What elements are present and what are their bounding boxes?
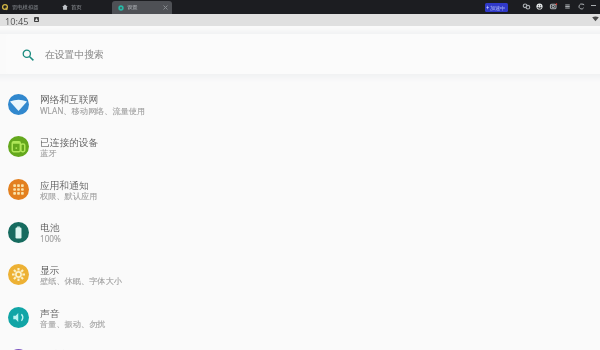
staticText: 在设置中搜索 [45, 49, 104, 61]
button[interactable]: 电池 [0, 211, 600, 254]
button[interactable]: 加速中 [485, 3, 508, 12]
button[interactable]: Close tab [163, 5, 168, 10]
staticText: 10:45 [5, 15, 29, 27]
button[interactable]: 应用和通知 [0, 168, 600, 211]
button[interactable]: Multi instance [523, 3, 530, 10]
staticText: 显示 [40, 265, 60, 277]
staticText: 电池 [40, 222, 60, 234]
staticText: 壁纸、休眠、字体大小 [40, 276, 122, 286]
staticText: 音量、振动、勿扰 [40, 319, 106, 329]
button[interactable]: Screenshot [550, 3, 557, 10]
staticText: 设置 [127, 4, 138, 11]
button[interactable]: 存储空间 [0, 338, 600, 350]
staticText: 加速中 [490, 5, 505, 11]
button[interactable]: Rotate [578, 3, 585, 10]
staticText: 雷电模拟器 [12, 4, 39, 11]
button[interactable]: 在设置中搜索 [6, 34, 600, 74]
button[interactable]: Emoji [536, 3, 543, 10]
staticText: 应用和通知 [40, 180, 89, 192]
staticText: 首页 [71, 4, 82, 11]
staticText: 已连接的设备 [40, 137, 99, 149]
staticText: 蓝牙 [40, 148, 57, 158]
button[interactable]: 声音 [0, 296, 600, 339]
button[interactable]: 网络和互联网 [0, 83, 600, 126]
button[interactable]: 设置 [112, 1, 172, 14]
button[interactable]: 已连接的设备 [0, 125, 600, 168]
button[interactable]: 显示 [0, 253, 600, 296]
button[interactable]: Minimize [591, 3, 596, 8]
staticText: 100% [40, 233, 61, 244]
staticText: 权限、默认应用 [40, 191, 98, 201]
staticText: 网络和互联网 [40, 94, 99, 106]
staticText: WLAN、移动网络、流量使用 [40, 105, 146, 116]
staticText: 声音 [40, 308, 60, 320]
button[interactable]: Menu [564, 3, 571, 10]
button[interactable]: 首页 [60, 0, 84, 14]
